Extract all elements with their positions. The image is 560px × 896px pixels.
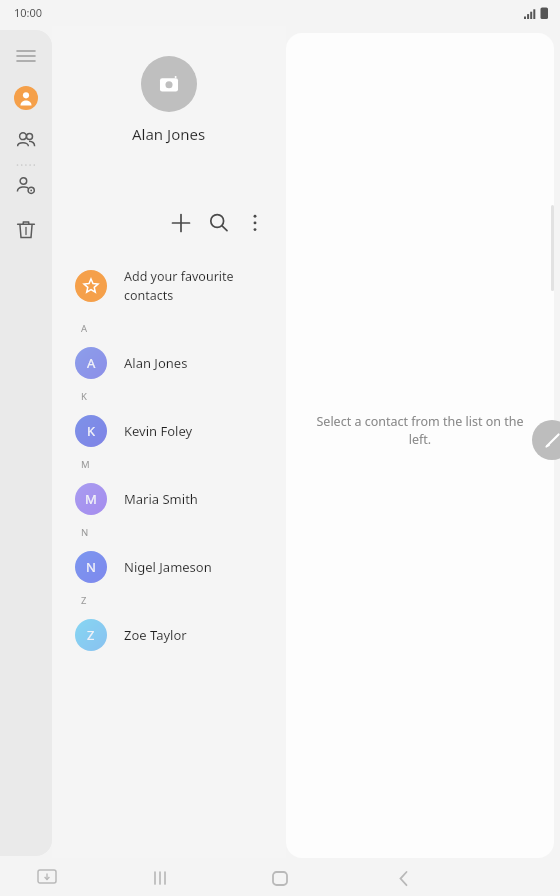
button[interactable]: Edit — [532, 420, 560, 460]
staticText: Zoe Taylor — [124, 626, 187, 644]
staticText: Add your favourite — [124, 268, 234, 285]
button[interactable]: Back — [392, 867, 416, 891]
button[interactable]: M — [52, 472, 286, 526]
staticText: Nigel Jameson — [124, 558, 212, 576]
staticText: N — [86, 558, 96, 576]
button[interactable]: K — [52, 404, 286, 458]
button[interactable]: Profile photo — [141, 56, 197, 112]
staticText: Kevin Foley — [124, 422, 193, 440]
button[interactable]: Menu — [14, 44, 38, 68]
staticText: Maria Smith — [124, 490, 198, 508]
staticText: K — [87, 422, 96, 440]
button[interactable]: Groups — [14, 129, 38, 153]
button[interactable]: Search — [200, 204, 238, 242]
button[interactable]: Trash — [14, 218, 38, 242]
staticText: Z — [81, 594, 87, 607]
button[interactable]: Contacts — [14, 86, 38, 110]
button[interactable]: Recent apps — [148, 867, 172, 891]
button[interactable]: Add your favourite — [52, 258, 286, 314]
button[interactable]: Home — [268, 867, 292, 891]
staticText: A — [81, 322, 88, 335]
staticText: 10:00 — [14, 5, 43, 20]
button[interactable]: N — [52, 540, 286, 594]
button[interactable]: Z — [52, 608, 286, 662]
staticText: M — [81, 458, 90, 471]
button[interactable]: A — [52, 336, 286, 390]
button[interactable]: Manage contacts — [14, 174, 38, 198]
button[interactable]: Add contact — [162, 204, 200, 242]
staticText: A — [87, 354, 96, 372]
staticText: contacts — [124, 287, 174, 304]
button[interactable]: More options — [238, 206, 272, 240]
staticText: M — [85, 490, 97, 508]
staticText: Alan Jones — [124, 354, 188, 372]
staticText: Select a contact from the list on the le… — [308, 413, 532, 448]
staticText: Alan Jones — [132, 124, 206, 144]
staticText: Z — [87, 626, 95, 644]
button[interactable]: Hide keyboard — [36, 867, 58, 889]
staticText: K — [81, 390, 87, 403]
staticText: N — [81, 526, 89, 539]
